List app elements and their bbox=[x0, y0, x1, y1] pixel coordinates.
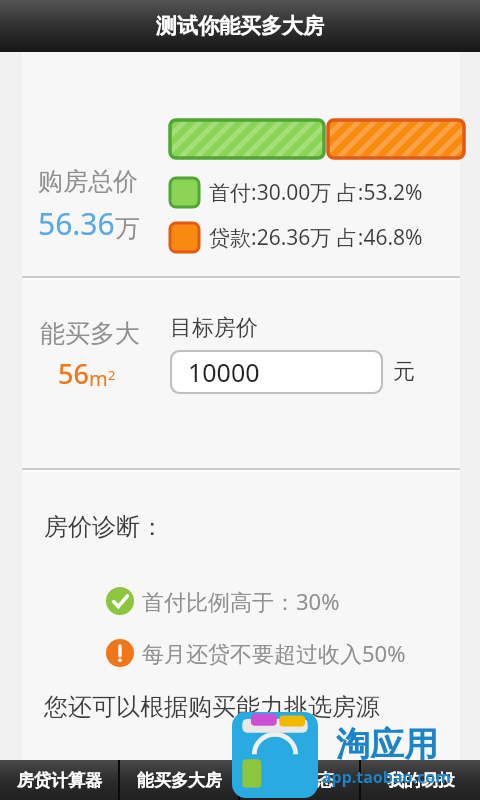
button[interactable]: 能买多大房 bbox=[120, 760, 238, 800]
staticText: 56.36 bbox=[38, 203, 115, 244]
staticText: 首付:30.00万 占:53.2% bbox=[209, 178, 423, 207]
staticText: 能买多大 bbox=[40, 318, 140, 349]
button[interactable]: 淘应用广告 bbox=[232, 712, 451, 798]
other: 通过 bbox=[106, 587, 134, 615]
staticText: 能买多大房 bbox=[137, 770, 222, 791]
staticText: 购房总价 bbox=[38, 166, 138, 197]
staticText: m bbox=[89, 365, 108, 392]
staticText: 万 bbox=[115, 213, 140, 244]
button[interactable]: 楼盘动态 bbox=[240, 760, 359, 800]
button[interactable]: 10000 bbox=[172, 352, 381, 392]
staticText: 每月还贷不要超过收入50% bbox=[142, 638, 406, 668]
staticText: 2 bbox=[108, 366, 116, 384]
staticText: 目标房价 bbox=[170, 314, 258, 342]
staticText: 楼盘动态 bbox=[266, 770, 334, 791]
staticText: app.taobao.com bbox=[322, 766, 451, 788]
staticText: 我的易投 bbox=[387, 770, 455, 791]
staticText: 56 bbox=[58, 355, 89, 392]
other: 警告 bbox=[106, 639, 134, 667]
button[interactable]: 房贷计算器 bbox=[0, 760, 118, 800]
staticText: 您还可以根据购买能力挑选房源 bbox=[44, 692, 380, 722]
button[interactable]: 我的易投 bbox=[361, 760, 480, 800]
staticText: 元 bbox=[393, 358, 415, 386]
staticText: 房贷计算器 bbox=[17, 770, 102, 791]
staticText: 10000 bbox=[188, 355, 260, 389]
staticText: 贷款:26.36万 占:46.8% bbox=[209, 223, 423, 252]
staticText: 首付比例高于：30% bbox=[142, 586, 340, 616]
staticText: 测试你能买多大房 bbox=[156, 13, 324, 39]
staticText: 房价诊断： bbox=[44, 512, 164, 542]
staticText: 淘应用 bbox=[336, 723, 438, 766]
